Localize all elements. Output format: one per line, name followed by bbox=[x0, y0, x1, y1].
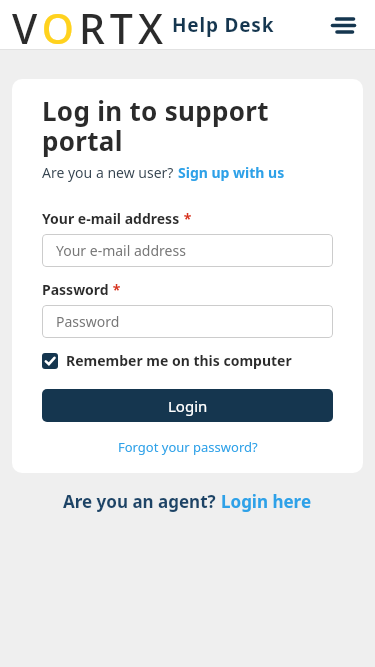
button[interactable]: Sign up with us bbox=[178, 163, 285, 182]
staticText: Your e-mail address bbox=[42, 209, 180, 228]
staticText: Remember me on this computer bbox=[66, 351, 292, 370]
staticText: Login bbox=[168, 396, 208, 416]
staticText: Help Desk bbox=[172, 12, 275, 38]
button[interactable]: Remember me on this computer bbox=[42, 351, 292, 370]
staticText: * bbox=[180, 209, 192, 228]
staticText: Your e-mail address bbox=[56, 241, 186, 260]
button[interactable]: Password bbox=[42, 305, 333, 338]
button[interactable] bbox=[323, 4, 365, 46]
staticText: Log in to support portal bbox=[42, 93, 269, 159]
staticText: Are you a new user? bbox=[42, 163, 178, 182]
staticText: Login here bbox=[221, 490, 312, 513]
staticText: Password bbox=[42, 280, 109, 299]
button[interactable]: VORTX bbox=[12, 0, 168, 49]
button[interactable]: Are you an agent? bbox=[63, 490, 312, 513]
button[interactable]: Your e-mail address bbox=[42, 234, 333, 267]
staticText: Are you an agent? bbox=[63, 490, 221, 513]
staticText: Password bbox=[56, 312, 120, 331]
button[interactable]: Login bbox=[42, 389, 333, 422]
button[interactable]: Forgot your password? bbox=[118, 438, 258, 456]
staticText: * bbox=[109, 280, 121, 299]
